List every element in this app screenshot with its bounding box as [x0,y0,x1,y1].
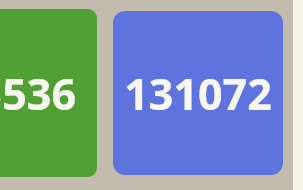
staticText: 65536 [0,64,76,123]
button[interactable]: 65536 [0,9,97,177]
button[interactable]: 131072 [113,11,283,175]
staticText: 131072 [124,64,272,123]
